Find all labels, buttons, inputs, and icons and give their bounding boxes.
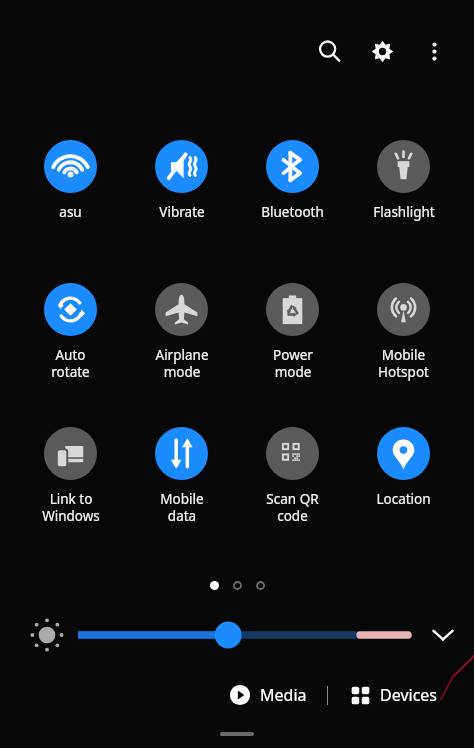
button[interactable]: Search — [316, 38, 343, 65]
button[interactable]: Location — [348, 427, 459, 508]
button[interactable]: Mobile Hotspot — [348, 283, 459, 381]
button[interactable]: Airplane mode — [126, 283, 237, 381]
button[interactable]: Bluetooth — [237, 140, 348, 221]
staticText: Auto rotate — [51, 346, 90, 381]
staticText: Power mode — [273, 346, 313, 381]
button[interactable]: asu — [15, 140, 126, 221]
button[interactable]: Power mode — [237, 283, 348, 381]
staticText: Bluetooth — [261, 203, 324, 221]
button[interactable]: Scan QR code — [237, 427, 348, 525]
button[interactable]: Media — [223, 680, 313, 710]
staticText: Link to Windows — [42, 490, 100, 525]
button[interactable]: Flashlight — [348, 140, 459, 221]
button[interactable]: Adaptive brightness — [28, 616, 66, 654]
button[interactable]: More options — [422, 39, 447, 64]
button[interactable]: Auto rotate — [15, 283, 126, 381]
staticText: Mobile data — [160, 490, 204, 525]
staticText: Scan QR code — [266, 490, 319, 525]
button[interactable]: Mobile data — [126, 427, 237, 525]
staticText: Mobile Hotspot — [378, 346, 429, 381]
button[interactable]: Expand — [426, 618, 460, 652]
staticText: Media — [260, 684, 307, 706]
staticText: Location — [376, 490, 431, 508]
staticText: Vibrate — [159, 203, 205, 221]
button[interactable]: Settings — [369, 38, 396, 65]
staticText: Flashlight — [373, 203, 435, 221]
staticText: asu — [59, 203, 82, 221]
staticText: Airplane mode — [155, 346, 209, 381]
button[interactable]: Brightness — [78, 618, 408, 652]
staticText: Devices — [380, 684, 438, 706]
button[interactable]: Link to Windows — [15, 427, 126, 525]
button[interactable]: Devices — [344, 680, 444, 710]
button[interactable]: Vibrate — [126, 140, 237, 221]
